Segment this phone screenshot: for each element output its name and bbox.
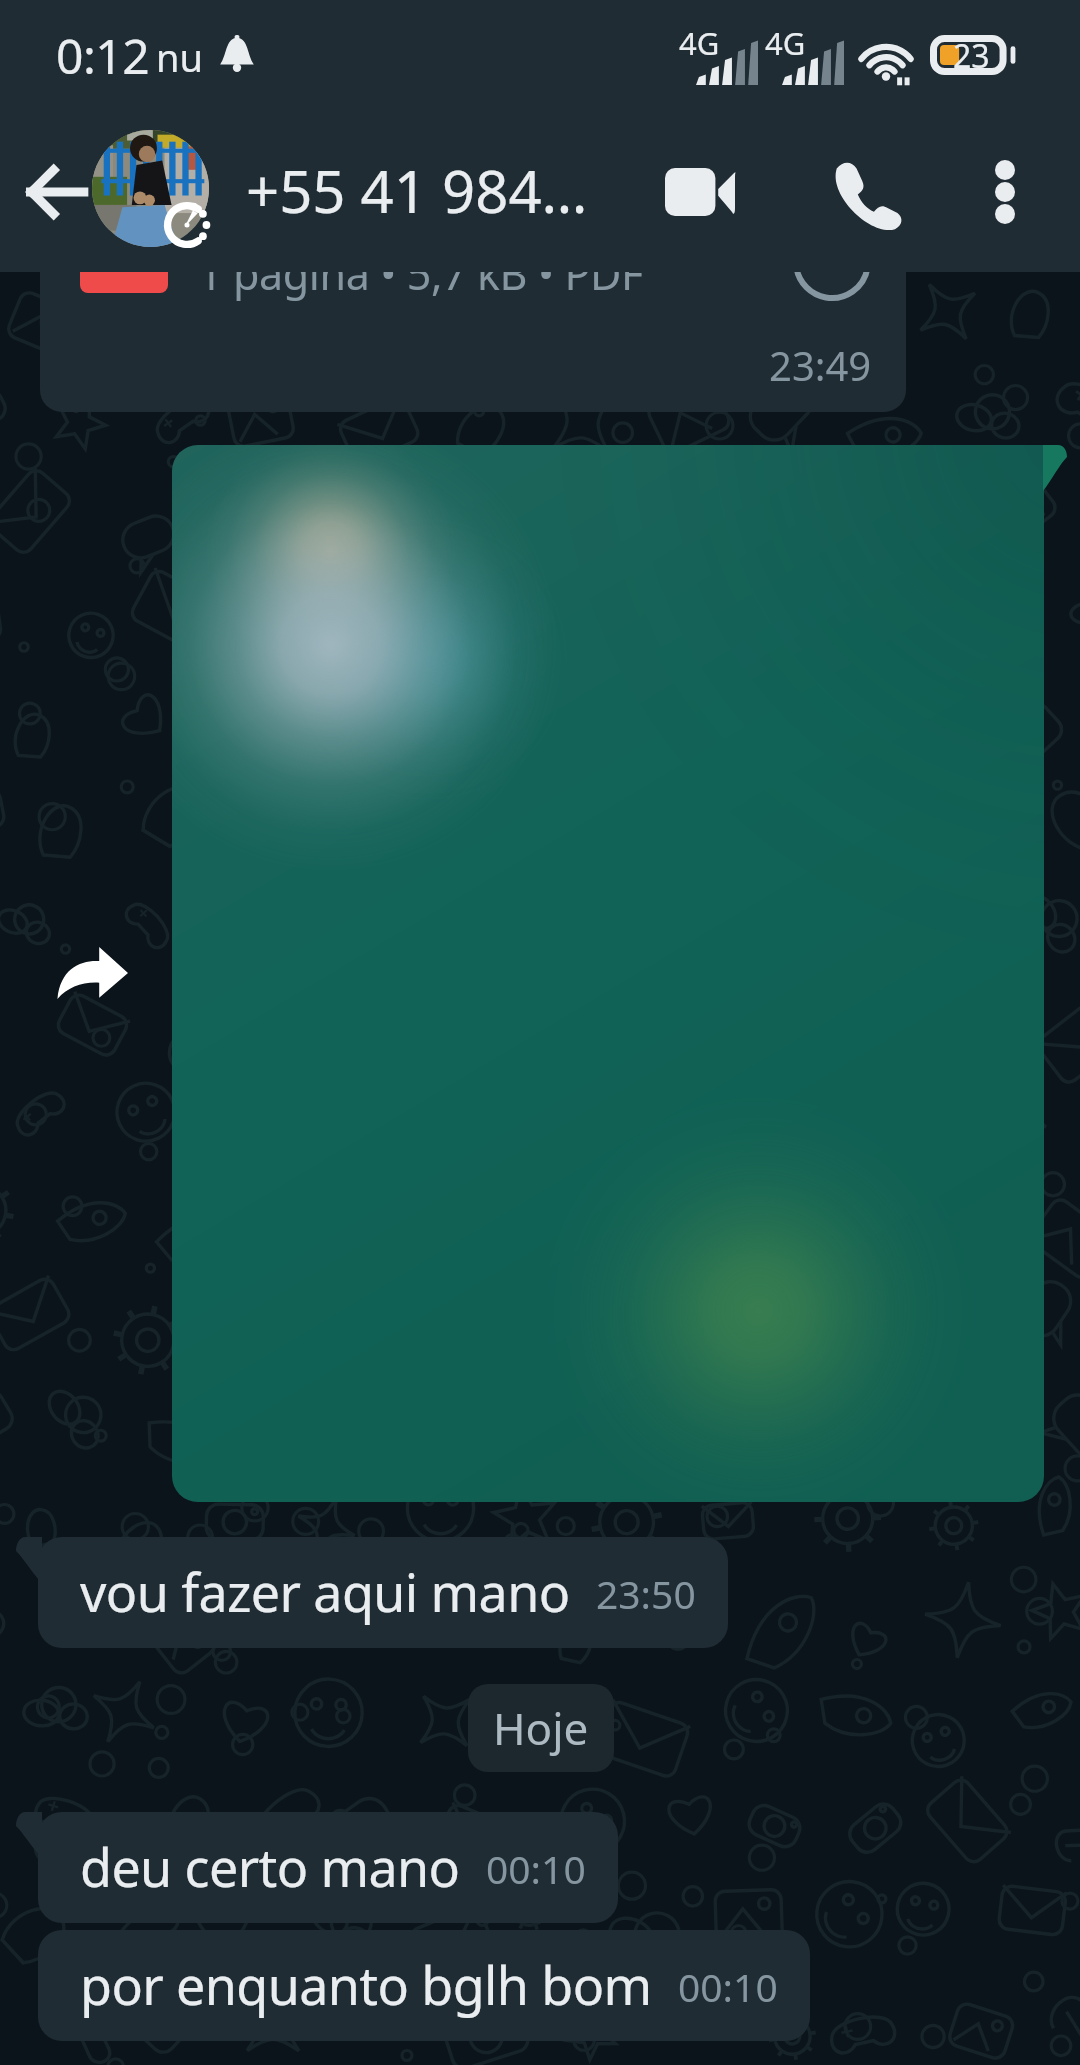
button[interactable]: +55 41 984… — [246, 151, 588, 230]
staticText: vou fazer aqui mano — [80, 1556, 570, 1627]
button[interactable]: Forward — [56, 946, 128, 1000]
button[interactable]: 1 página • 5,7 kB • PDF — [40, 218, 906, 412]
button[interactable]: Back — [16, 152, 96, 232]
staticText: 23:50 — [596, 1567, 696, 1620]
button[interactable]: vou fazer aqui mano — [38, 1537, 728, 1648]
staticText: 1 página • 5,7 kB • PDF — [198, 244, 643, 303]
staticText: 0:12 — [56, 23, 150, 88]
staticText: 4G — [765, 22, 806, 64]
staticText: 23:49 — [769, 338, 872, 392]
button[interactable]: More options — [955, 142, 1055, 242]
button[interactable] — [172, 445, 1044, 1502]
button[interactable]: Call — [814, 142, 914, 242]
button[interactable]: Hoje — [468, 1684, 614, 1772]
button[interactable]: deu certo mano — [38, 1812, 618, 1923]
staticText: Hoje — [493, 1698, 589, 1758]
staticText: nu — [156, 31, 203, 83]
staticText: 00:10 — [678, 1960, 778, 2013]
staticText: por enquanto bglh bom — [80, 1949, 652, 2020]
button[interactable]: Video call — [650, 142, 750, 242]
staticText: 23 — [953, 34, 990, 74]
staticText: deu certo mano — [80, 1831, 460, 1902]
button[interactable]: Profile photo — [92, 130, 209, 247]
button[interactable]: por enquanto bglh bom — [38, 1930, 810, 2041]
staticText: 00:10 — [486, 1842, 586, 1895]
staticText: 4G — [679, 22, 720, 64]
